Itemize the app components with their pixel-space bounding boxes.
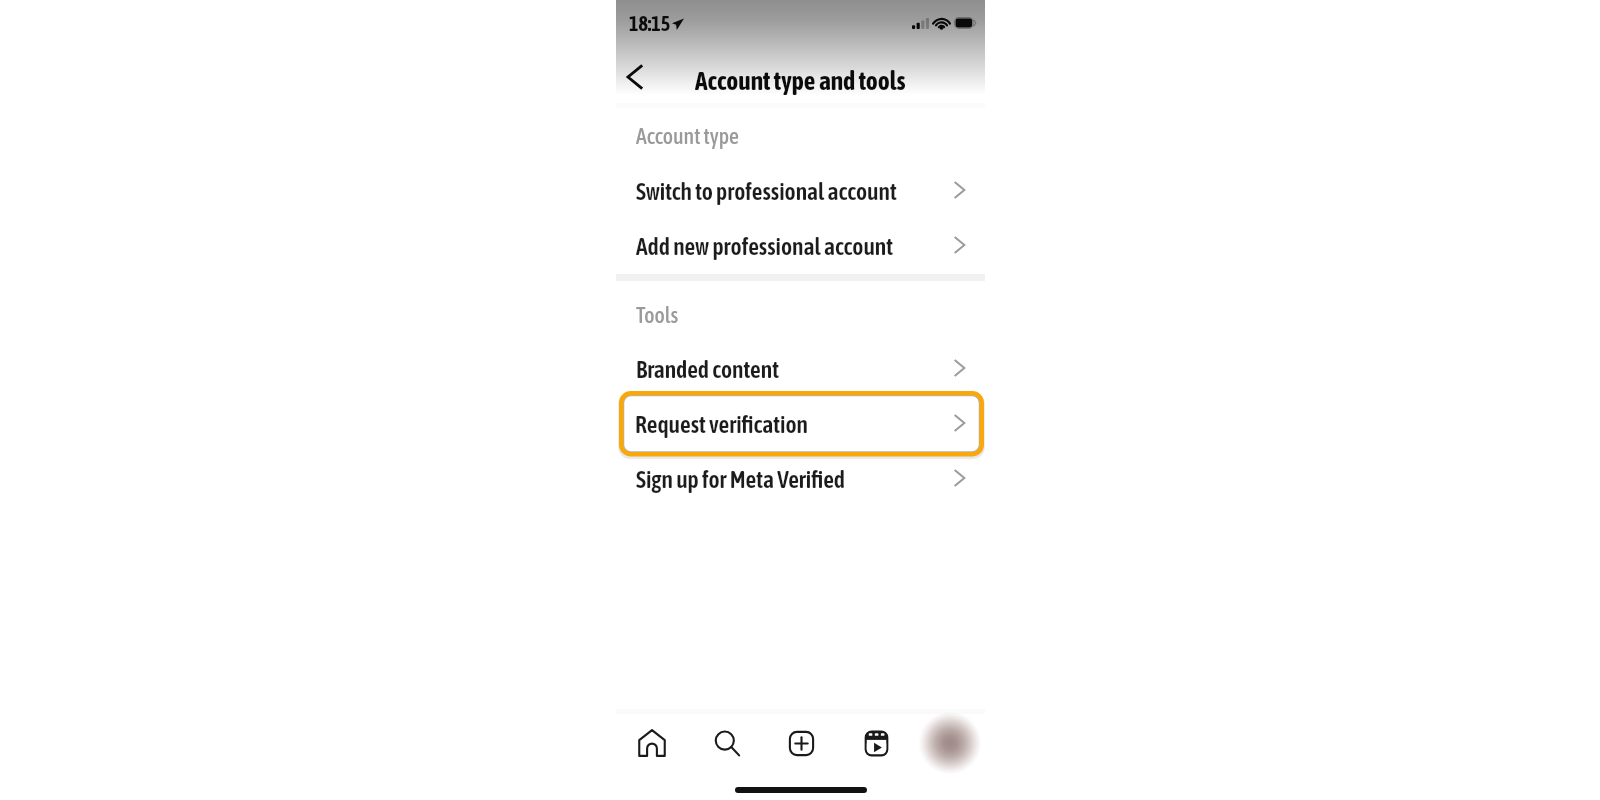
button[interactable]: Sign up for Meta Verified <box>616 452 985 507</box>
button[interactable]: Switch to professional account <box>616 164 985 219</box>
staticText: Account type <box>636 124 739 149</box>
staticText: 18:15 <box>629 12 671 35</box>
button[interactable]: Profile <box>926 719 974 767</box>
staticText: Request verification <box>635 411 809 438</box>
button[interactable]: Home <box>628 719 676 767</box>
staticText: Branded content <box>636 356 780 383</box>
button[interactable]: Back <box>616 58 654 96</box>
button[interactable]: Search <box>703 719 751 767</box>
button[interactable]: Request verification <box>616 397 985 452</box>
button[interactable]: Add new professional account <box>616 219 985 274</box>
staticText: Sign up for Meta Verified <box>636 466 845 493</box>
staticText: Add new professional account <box>636 233 894 260</box>
staticText: Account type and tools <box>695 66 906 95</box>
staticText: Switch to professional account <box>636 178 897 205</box>
button[interactable]: Branded content <box>616 342 985 397</box>
staticText: Tools <box>636 303 679 328</box>
button[interactable]: Create <box>777 719 825 767</box>
button[interactable]: Reels <box>852 719 900 767</box>
